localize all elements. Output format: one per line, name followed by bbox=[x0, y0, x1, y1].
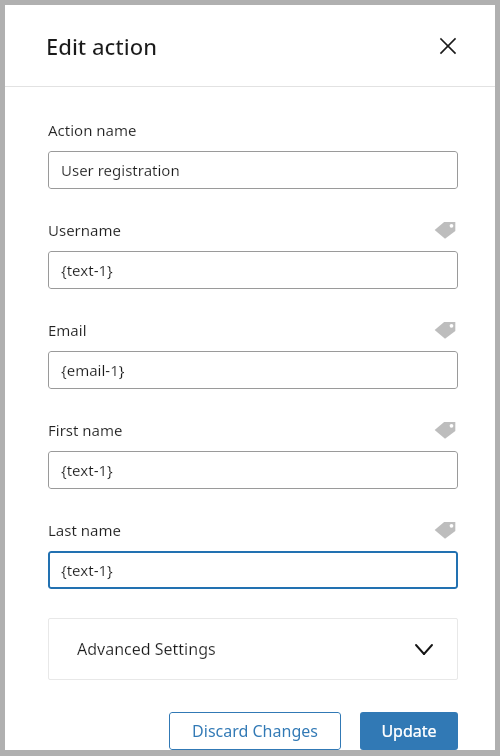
staticText: Username bbox=[48, 220, 121, 240]
button[interactable]: {email-1} bbox=[48, 351, 458, 389]
button[interactable]: Discard Changes bbox=[169, 712, 341, 750]
button[interactable]: {text-1} bbox=[48, 251, 458, 289]
staticText: Last name bbox=[48, 520, 121, 540]
button[interactable]: Update bbox=[360, 712, 458, 750]
button[interactable]: {text-1} bbox=[48, 551, 458, 589]
button[interactable]: Insert field token bbox=[432, 420, 458, 440]
staticText: {email-1} bbox=[61, 360, 125, 380]
staticText: Update bbox=[381, 720, 437, 742]
button[interactable]: Advanced Settings bbox=[48, 618, 458, 680]
staticText: Action name bbox=[48, 120, 137, 140]
staticText: Email bbox=[48, 320, 87, 340]
button[interactable]: User registration bbox=[48, 151, 458, 189]
staticText: {text-1} bbox=[61, 260, 113, 280]
button[interactable]: Insert field token bbox=[432, 220, 458, 240]
staticText: User registration bbox=[61, 160, 180, 180]
button[interactable]: Insert field token bbox=[432, 520, 458, 540]
staticText: Advanced Settings bbox=[77, 638, 216, 660]
button[interactable]: Insert field token bbox=[432, 320, 458, 340]
button[interactable]: {text-1} bbox=[48, 451, 458, 489]
staticText: Edit action bbox=[46, 31, 157, 61]
button[interactable]: Close bbox=[433, 31, 463, 61]
staticText: First name bbox=[48, 420, 123, 440]
staticText: Discard Changes bbox=[192, 720, 318, 742]
staticText: {text-1} bbox=[61, 460, 113, 480]
staticText: {text-1} bbox=[61, 560, 113, 580]
